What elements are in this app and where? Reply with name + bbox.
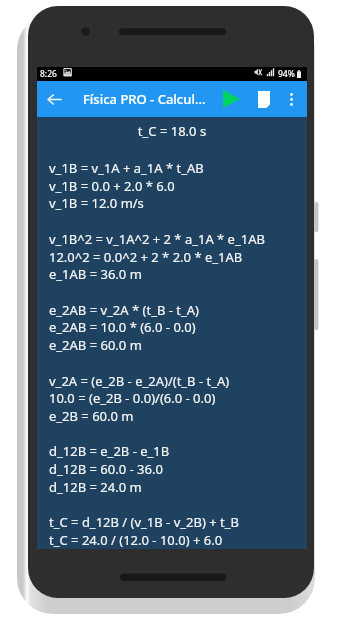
staticText: e_2AB = v_2A * (t_B - t_A) <box>49 301 199 319</box>
staticText: 94% <box>278 68 295 80</box>
staticText: v_1B = 0.0 + 2.0 * 6.0 <box>49 177 175 195</box>
staticText: 10.0 = (e_2B - 0.0)/(6.0 - 0.0) <box>49 389 216 407</box>
staticText: v_1B^2 = v_1A^2 + 2 * a_1A * e_1AB <box>49 230 265 248</box>
staticText: e_1AB = 36.0 m <box>49 265 142 283</box>
staticText: t_C = 18.0 s <box>37 122 307 140</box>
staticText: d_12B = 24.0 m <box>49 478 142 496</box>
staticText: v_1B = 12.0 m/s <box>49 194 144 212</box>
button[interactable]: Back <box>37 82 71 116</box>
staticText: e_2AB = 60.0 m <box>49 336 142 354</box>
staticText: v_2A = (e_2B - e_2A)/(t_B - t_A) <box>49 372 230 390</box>
staticText: e_2AB = 10.0 * (6.0 - 0.0) <box>49 318 196 336</box>
staticText: d_12B = e_2B - e_1B <box>49 442 170 460</box>
staticText: t_C = d_12B / (v_1B - v_2B) + t_B <box>49 513 239 531</box>
button[interactable]: New document <box>249 82 278 116</box>
staticText: t_C = 24.0 / (12.0 - 10.0) + 6.0 <box>49 531 223 549</box>
staticText: v_1B = v_1A + a_1A * t_AB <box>49 159 204 177</box>
button[interactable]: More options <box>278 82 304 116</box>
button[interactable]: Run <box>213 82 249 116</box>
staticText: d_12B = 60.0 - 36.0 <box>49 460 163 478</box>
staticText: e_2B = 60.0 m <box>49 407 134 425</box>
staticText: Física PRO - Calcul... <box>83 90 206 108</box>
staticText: 12.0^2 = 0.0^2 + 2 * 2.0 * e_1AB <box>49 248 243 266</box>
staticText: 8:26 <box>40 68 57 80</box>
